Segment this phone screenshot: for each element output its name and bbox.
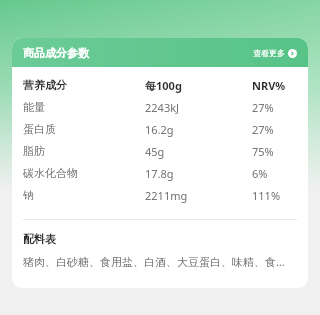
staticText: 能量 — [23, 100, 45, 114]
staticText: 查看更多 — [253, 48, 285, 58]
staticText: 猪肉、白砂糖、食用盐、白酒、大豆蛋白、味精、食… — [23, 254, 285, 269]
staticText: 2211mg — [145, 188, 188, 203]
staticText: 6% — [252, 166, 268, 181]
staticText: 16.2g — [145, 122, 174, 137]
button[interactable]: 商品成分参数 — [12, 38, 308, 67]
button[interactable]: 查看更多 — [253, 48, 297, 58]
staticText: 111% — [252, 188, 281, 203]
staticText: 配料表 — [23, 232, 56, 246]
staticText: 商品成分参数 — [23, 46, 89, 60]
staticText: 27% — [252, 122, 274, 137]
staticText: 2243kJ — [145, 100, 180, 115]
other: View more — [288, 49, 297, 58]
staticText: 17.8g — [145, 166, 174, 181]
staticText: 钠 — [23, 188, 34, 202]
staticText: 碳水化合物 — [23, 166, 78, 180]
staticText: 每100g — [145, 78, 182, 93]
staticText: 27% — [252, 100, 274, 115]
staticText: 脂肪 — [23, 144, 45, 158]
staticText: NRV% — [252, 78, 286, 93]
staticText: 蛋白质 — [23, 122, 56, 136]
staticText: 75% — [252, 144, 274, 159]
staticText: 45g — [145, 144, 165, 159]
staticText: 营养成分 — [23, 78, 67, 92]
